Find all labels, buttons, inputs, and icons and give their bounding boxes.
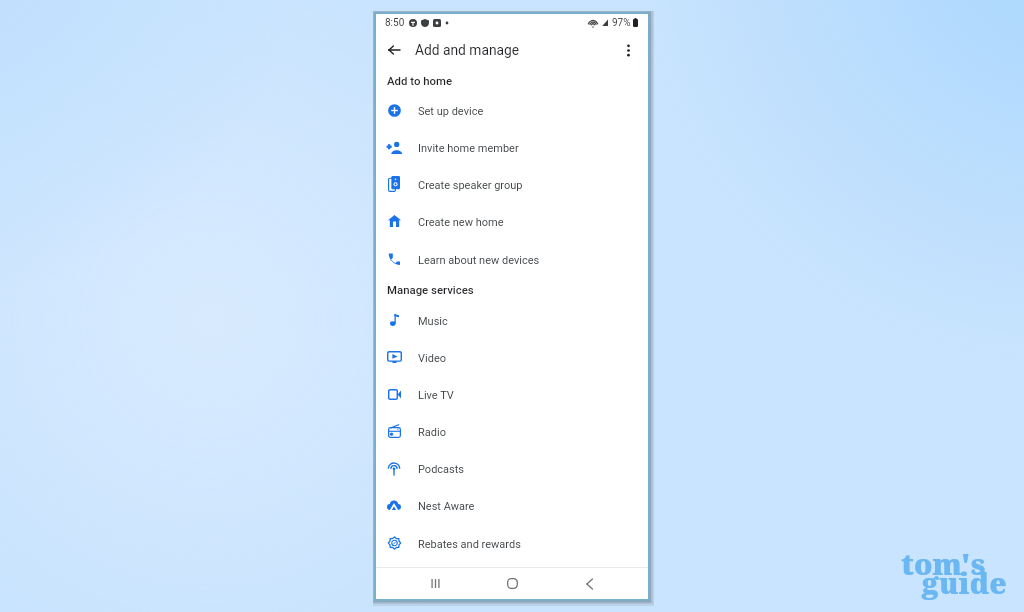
button[interactable]: Video <box>376 344 648 372</box>
staticText: Nest Aware <box>418 500 475 513</box>
button[interactable]: Create speaker group <box>376 171 648 199</box>
staticText: Set up device <box>418 105 484 118</box>
staticText: Create new home <box>418 216 504 229</box>
staticText: Manage services <box>387 283 474 296</box>
button[interactable]: Learn about new devices <box>376 246 648 274</box>
staticText: Rebates and rewards <box>418 538 521 551</box>
staticText: guide <box>922 563 1007 602</box>
button[interactable]: Create new home <box>376 208 648 236</box>
staticText: 8:50 <box>385 17 405 29</box>
button[interactable]: Set up device <box>376 97 648 125</box>
staticText: Radio <box>418 426 446 439</box>
staticText: Invite home member <box>418 142 519 155</box>
staticText: 97% <box>612 17 631 29</box>
button[interactable]: Music <box>376 307 648 335</box>
staticText: Add and manage <box>415 42 520 58</box>
button[interactable]: Invite home member <box>376 134 648 162</box>
staticText: Music <box>418 315 448 328</box>
button[interactable]: Nest Aware <box>376 492 648 520</box>
staticText: Create speaker group <box>418 179 523 192</box>
button[interactable]: Home <box>494 568 530 599</box>
staticText: Podcasts <box>418 463 465 476</box>
button[interactable]: Live TV <box>376 381 648 409</box>
staticText: Live TV <box>418 389 454 402</box>
button[interactable]: More options <box>616 38 640 62</box>
button[interactable]: Back <box>571 568 607 599</box>
staticText: Video <box>418 352 446 365</box>
button[interactable]: Back <box>383 39 405 61</box>
button[interactable]: Radio <box>376 418 648 446</box>
staticText: Add to home <box>387 74 453 87</box>
staticText: Learn about new devices <box>418 254 540 267</box>
button[interactable]: Rebates and rewards <box>376 530 648 558</box>
button[interactable]: Recent apps <box>417 568 453 599</box>
button[interactable]: Podcasts <box>376 455 648 483</box>
staticText: tom's <box>901 544 986 583</box>
